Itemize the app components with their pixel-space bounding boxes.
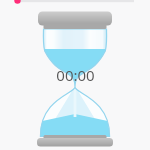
staticText: 00:00 — [56, 65, 95, 85]
